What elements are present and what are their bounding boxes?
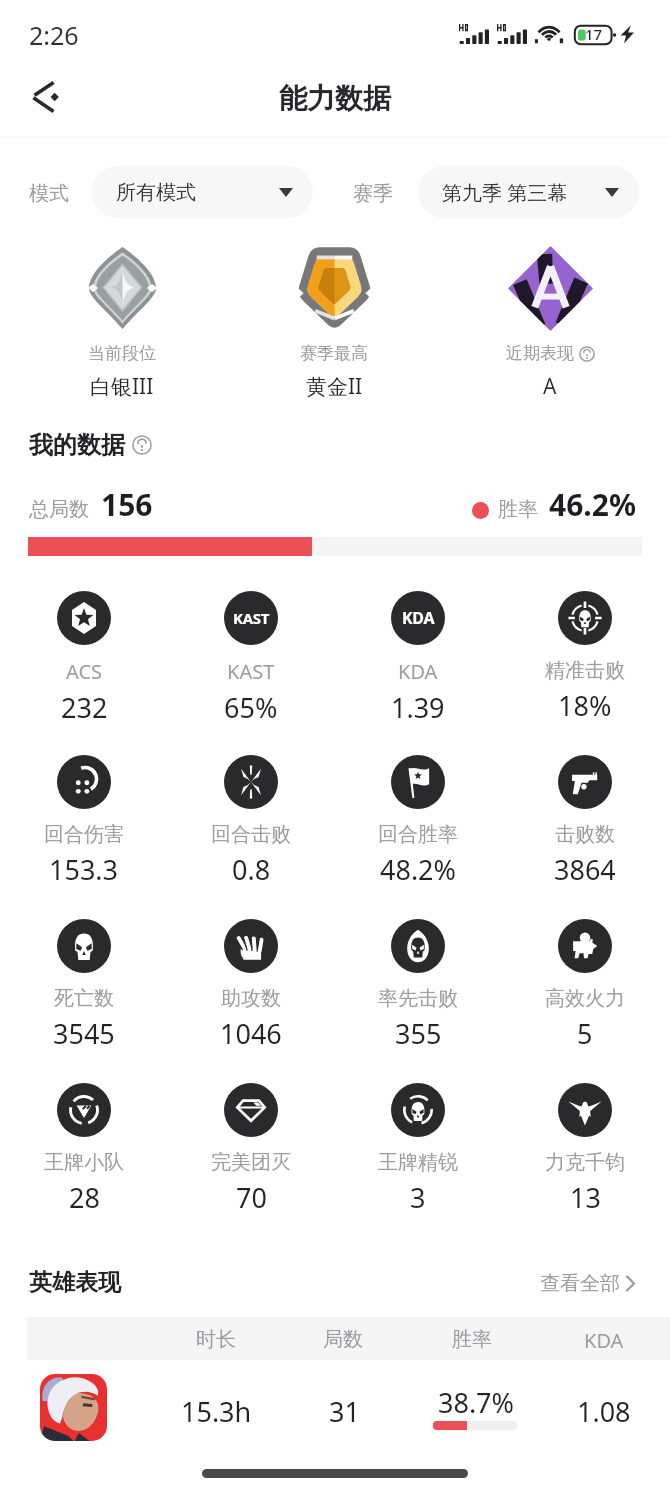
- staticText: 局数: [323, 1327, 363, 1352]
- button[interactable]: 王牌精锐: [335, 1083, 501, 1216]
- staticText: 0.8: [232, 851, 271, 888]
- button[interactable]: 当前段位: [32, 243, 212, 401]
- staticText: 当前段位: [88, 343, 156, 364]
- button[interactable]: 力克千钧: [502, 1083, 668, 1216]
- staticText: 能力数据: [279, 81, 391, 116]
- staticText: KDA: [402, 607, 435, 629]
- button[interactable]: 赛季最高: [244, 243, 424, 401]
- staticText: KAST: [227, 658, 275, 685]
- staticText: 近期表现: [506, 343, 574, 364]
- staticText: 46.2%: [549, 484, 636, 525]
- staticText: 5: [577, 1015, 593, 1052]
- button[interactable]: 率先击败: [335, 919, 501, 1052]
- button[interactable]: KDA: [335, 591, 501, 726]
- staticText: 黄金II: [306, 372, 363, 401]
- button[interactable]: 死亡数: [1, 919, 167, 1052]
- staticText: 70: [236, 1179, 267, 1216]
- staticText: KAST: [233, 608, 270, 628]
- button[interactable]: 15.3h: [0, 1360, 670, 1460]
- staticText: ACS: [66, 658, 102, 685]
- staticText: 156: [101, 484, 153, 525]
- staticText: 15.3h: [181, 1393, 252, 1430]
- button[interactable]: 第九季 第三幕: [418, 166, 639, 218]
- staticText: 13: [570, 1179, 601, 1216]
- staticText: 153.3: [49, 851, 119, 888]
- button[interactable]: 查看全部: [540, 1271, 636, 1296]
- staticText: 1046: [220, 1015, 282, 1052]
- staticText: 率先击败: [378, 986, 458, 1011]
- staticText: 高效火力: [545, 986, 625, 1011]
- staticText: 助攻数: [221, 986, 281, 1011]
- staticText: 48.2%: [380, 851, 457, 888]
- staticText: 时长: [196, 1327, 236, 1352]
- button[interactable]: 回合伤害: [1, 755, 167, 888]
- button[interactable]: 所有模式: [92, 166, 313, 218]
- button[interactable]: 高效火力: [502, 919, 668, 1052]
- staticText: 回合胜率: [378, 822, 458, 847]
- staticText: KDA: [398, 658, 438, 685]
- staticText: 赛季最高: [300, 343, 368, 364]
- staticText: 28: [69, 1179, 100, 1216]
- staticText: 王牌小队: [44, 1150, 124, 1175]
- staticText: 回合击败: [211, 822, 291, 847]
- staticText: 355: [395, 1015, 442, 1052]
- staticText: 力克千钧: [545, 1150, 625, 1175]
- staticText: 胜率: [452, 1327, 492, 1352]
- staticText: 65%: [224, 689, 278, 726]
- staticText: 232: [61, 689, 108, 726]
- button[interactable]: 回合击败: [168, 755, 334, 888]
- button[interactable]: Back: [12, 68, 70, 126]
- button[interactable]: 助攻数: [168, 919, 334, 1052]
- staticText: 白银III: [90, 372, 154, 401]
- button[interactable]: ACS: [1, 591, 167, 726]
- button[interactable]: 回合胜率: [335, 755, 501, 888]
- staticText: 1.39: [391, 689, 445, 726]
- staticText: 击败数: [555, 822, 615, 847]
- staticText: 31: [329, 1393, 360, 1430]
- button[interactable]: 王牌小队: [1, 1083, 167, 1216]
- button[interactable]: 近期表现: [460, 243, 640, 401]
- staticText: 3545: [53, 1015, 115, 1052]
- staticText: 我的数据: [29, 430, 125, 460]
- staticText: KDA: [584, 1327, 624, 1354]
- staticText: A: [543, 372, 557, 401]
- button[interactable]: 击败数: [502, 755, 668, 888]
- staticText: 模式: [29, 181, 69, 206]
- staticText: 赛季: [353, 181, 393, 206]
- staticText: 第九季 第三幕: [442, 179, 568, 206]
- staticText: 总局数: [29, 497, 89, 522]
- staticText: 回合伤害: [44, 822, 124, 847]
- staticText: 所有模式: [116, 180, 196, 205]
- staticText: 3: [410, 1179, 426, 1216]
- staticText: 2:26: [29, 18, 79, 52]
- staticText: 英雄表现: [29, 1268, 121, 1297]
- button[interactable]: 完美团灭: [168, 1083, 334, 1216]
- button[interactable]: KAST: [168, 591, 334, 726]
- button[interactable]: 精准击败: [502, 591, 668, 724]
- staticText: 查看全部: [540, 1271, 620, 1296]
- staticText: 王牌精锐: [378, 1150, 458, 1175]
- staticText: 精准击败: [545, 658, 625, 683]
- staticText: 死亡数: [54, 986, 114, 1011]
- staticText: 18%: [558, 687, 612, 724]
- staticText: 3864: [554, 851, 616, 888]
- staticText: 完美团灭: [211, 1150, 291, 1175]
- staticText: 38.7%: [438, 1384, 515, 1421]
- staticText: 17: [585, 24, 603, 44]
- staticText: 胜率: [498, 497, 538, 522]
- staticText: 1.08: [577, 1393, 631, 1430]
